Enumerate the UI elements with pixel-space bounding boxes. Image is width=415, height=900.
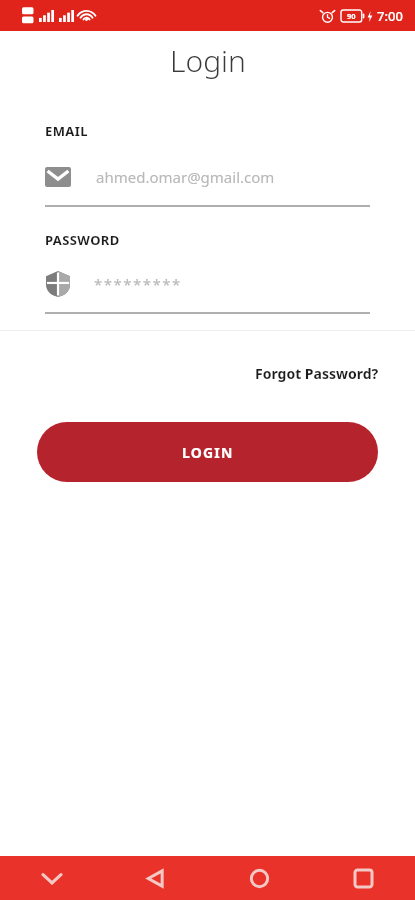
staticText: EMAIL <box>45 122 88 140</box>
staticText: 90 <box>347 11 356 21</box>
staticText: Forgot Password? <box>255 364 379 383</box>
button[interactable]: Forgot Password? <box>251 360 383 387</box>
button[interactable]: Hide keyboard <box>0 856 103 900</box>
button[interactable]: Recents <box>311 856 415 900</box>
staticText: PASSWORD <box>45 231 120 249</box>
staticText: 7:00 <box>377 7 403 25</box>
staticText: Login <box>170 40 246 81</box>
button[interactable]: Back <box>103 856 207 900</box>
button[interactable]: LOGIN <box>37 422 378 482</box>
staticText: LOGIN <box>182 443 234 462</box>
button[interactable]: ahmed.omar@gmail.com <box>0 159 415 195</box>
button[interactable]: Home <box>207 856 311 900</box>
button[interactable]: ********* <box>0 266 415 302</box>
staticText: ahmed.omar@gmail.com <box>96 167 275 187</box>
staticText: ********* <box>94 274 182 294</box>
